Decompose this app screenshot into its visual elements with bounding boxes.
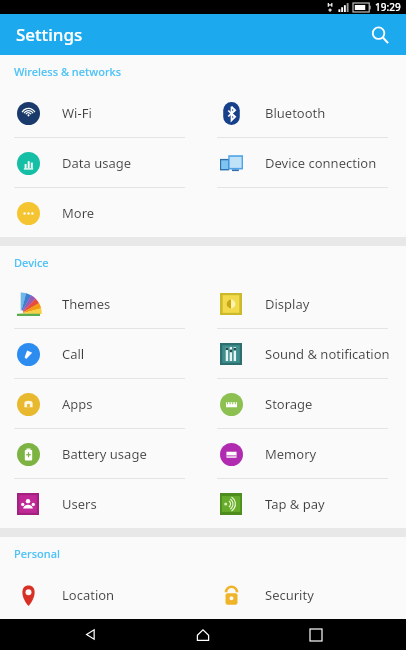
staticText: Apps <box>62 395 93 413</box>
staticText: 19:29 <box>375 0 401 14</box>
staticText: Personal <box>14 546 60 561</box>
button[interactable]: Wi-Fi <box>0 88 203 137</box>
button[interactable]: Battery usage <box>0 429 203 478</box>
button[interactable]: Location <box>0 570 203 619</box>
button[interactable]: Security <box>203 570 406 619</box>
staticText: Security <box>265 586 314 604</box>
staticText: Location <box>62 586 115 604</box>
button[interactable]: Users <box>0 479 203 528</box>
button[interactable]: Apps <box>0 379 203 428</box>
staticText: Device <box>14 255 49 270</box>
staticText: Wi-Fi <box>62 104 92 122</box>
staticText: Settings <box>16 23 83 46</box>
button[interactable]: Call <box>0 329 203 378</box>
button[interactable]: Memory <box>203 429 406 478</box>
button[interactable]: Tap & pay <box>203 479 406 528</box>
staticText: Display <box>265 295 310 313</box>
button[interactable]: Home <box>180 619 226 650</box>
button[interactable]: Storage <box>203 379 406 428</box>
staticText: Device connection <box>265 154 377 172</box>
button[interactable]: Search <box>362 17 398 53</box>
staticText: Tap & pay <box>265 495 325 513</box>
staticText: Wireless & networks <box>14 64 122 79</box>
staticText: Battery usage <box>62 445 147 463</box>
staticText: Memory <box>265 445 317 463</box>
button[interactable]: Bluetooth <box>203 88 406 137</box>
staticText: Themes <box>62 295 111 313</box>
staticText: Sound & notification <box>265 345 390 363</box>
staticText: Users <box>62 495 97 513</box>
staticText: Data usage <box>62 154 132 172</box>
button[interactable]: Back <box>67 619 113 650</box>
button[interactable]: More <box>0 188 203 237</box>
staticText: Call <box>62 345 85 363</box>
button[interactable]: Data usage <box>0 138 203 187</box>
staticText: Storage <box>265 395 313 413</box>
button[interactable]: Recent apps <box>293 619 339 650</box>
staticText: Bluetooth <box>265 104 326 122</box>
button[interactable]: Device connection <box>203 138 406 187</box>
button[interactable]: Sound & notification <box>203 329 406 378</box>
button[interactable]: Display <box>203 279 406 328</box>
staticText: More <box>62 204 95 222</box>
button[interactable]: Themes <box>0 279 203 328</box>
